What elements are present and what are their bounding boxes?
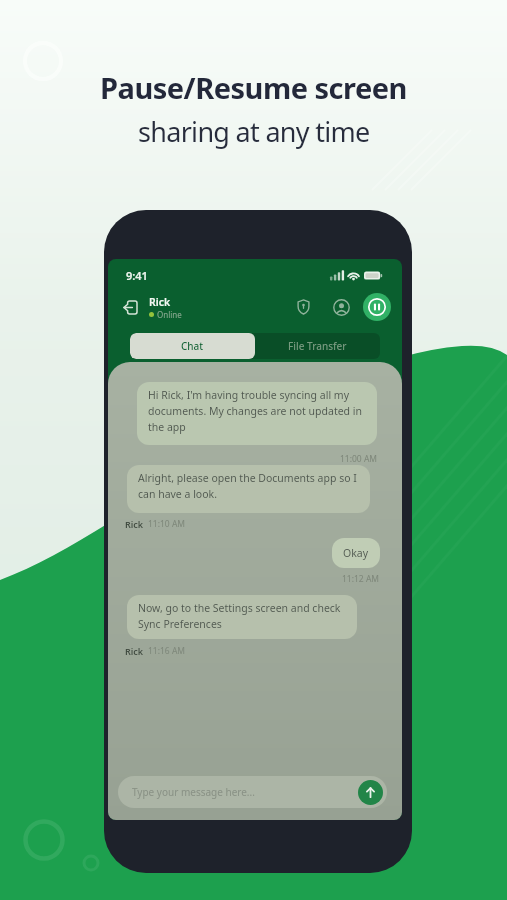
button[interactable]: Type your message here... [118, 776, 387, 808]
staticText: Rick [125, 645, 144, 657]
staticText: 11:12 AM [342, 573, 380, 585]
button[interactable] [332, 298, 350, 316]
button[interactable]: File Transfer [255, 333, 380, 359]
staticText: 9:41 [126, 268, 148, 283]
staticText: sharing at any time [138, 113, 370, 150]
staticText: Chat [181, 339, 204, 353]
staticText: Alright, please open the Documents app s… [138, 471, 357, 501]
staticText: 11:10 AM [148, 518, 186, 530]
button[interactable]: Chat [130, 333, 255, 359]
staticText: Pause/Resume screen [100, 68, 407, 107]
staticText: Okay [343, 546, 369, 560]
staticText: File Transfer [288, 339, 347, 353]
button[interactable] [120, 297, 140, 317]
staticText: Now, go to the Settings screen and check… [138, 601, 341, 631]
staticText: Rick [125, 518, 144, 530]
button[interactable] [363, 293, 391, 321]
staticText: Rick [149, 295, 171, 309]
staticText: 11:00 AM [340, 453, 378, 465]
staticText: Type your message here... [132, 785, 255, 799]
staticText: Online [157, 309, 182, 320]
button[interactable] [295, 299, 311, 315]
staticText: Hi Rick, I'm having trouble syncing all … [148, 388, 363, 434]
staticText: 11:16 AM [148, 645, 186, 657]
button[interactable] [358, 780, 383, 805]
